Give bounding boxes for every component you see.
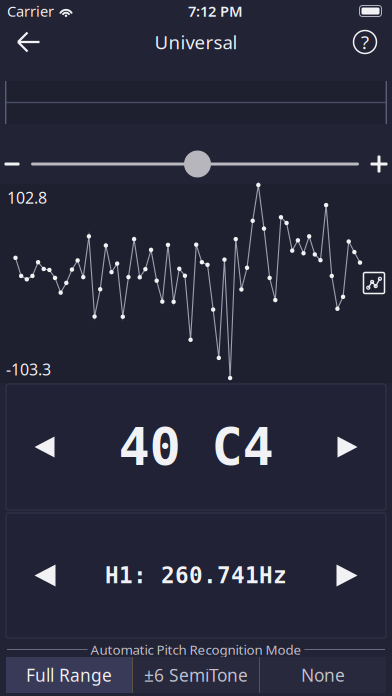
- staticText: Universal: [154, 30, 237, 54]
- button[interactable]: None: [260, 657, 386, 693]
- button[interactable]: Increase range: [368, 153, 390, 175]
- staticText: None: [301, 663, 345, 686]
- staticText: ?: [361, 30, 369, 54]
- button[interactable]: Help: [342, 22, 388, 62]
- button[interactable]: Next note: [309, 411, 386, 483]
- button[interactable]: Back: [6, 22, 52, 62]
- staticText: ±6 SemiTone: [144, 663, 248, 686]
- staticText: Automatic Pitch Recognition Mode: [90, 641, 301, 658]
- staticText: Full Range: [26, 663, 112, 686]
- button[interactable]: Decrease range: [1, 153, 23, 175]
- staticText: -103.3: [6, 359, 51, 380]
- button[interactable]: ±6 SemiTone: [133, 657, 259, 693]
- staticText: 102.8: [7, 187, 47, 208]
- staticText: 40 C4: [118, 417, 273, 476]
- button[interactable]: Spectrum view: [363, 272, 385, 294]
- button[interactable]: Previous note: [6, 411, 83, 483]
- staticText: H1: 260.741Hz: [105, 563, 287, 588]
- button[interactable]: Full Range: [6, 657, 132, 693]
- button[interactable]: Previous harmonic: [6, 544, 84, 606]
- staticText: 7:12 PM: [188, 1, 243, 21]
- staticText: Carrier: [7, 1, 54, 21]
- button[interactable]: Next harmonic: [308, 544, 386, 606]
